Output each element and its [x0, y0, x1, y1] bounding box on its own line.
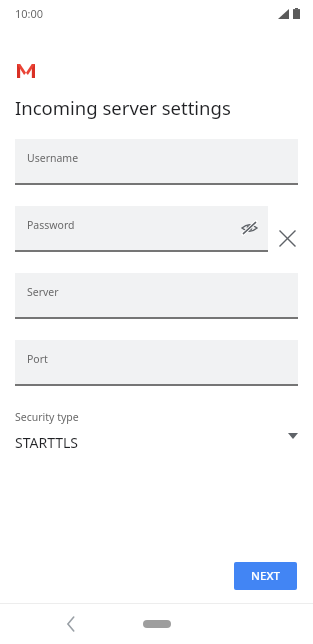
button[interactable]: Security type	[0, 410, 313, 452]
staticText: NEXT	[251, 568, 280, 584]
button[interactable]: Show password	[238, 217, 260, 239]
staticText: Username	[27, 151, 79, 165]
button[interactable]: NEXT	[234, 562, 297, 590]
button[interactable]: Username	[15, 139, 298, 185]
button[interactable]: Server	[15, 273, 298, 319]
staticText: Incoming server settings	[15, 95, 231, 120]
button[interactable]: Clear password	[275, 226, 299, 250]
staticText: 10:00	[15, 6, 44, 21]
button[interactable]: Password	[15, 206, 268, 252]
staticText: STARTTLS	[15, 433, 79, 452]
staticText: Security type	[15, 410, 79, 424]
button[interactable]: Back	[58, 611, 84, 637]
button[interactable]: Port	[15, 340, 298, 386]
button[interactable]: Home	[141, 616, 173, 632]
staticText: Server	[27, 285, 59, 299]
staticText: Password	[27, 218, 75, 232]
staticText: Port	[27, 352, 48, 366]
